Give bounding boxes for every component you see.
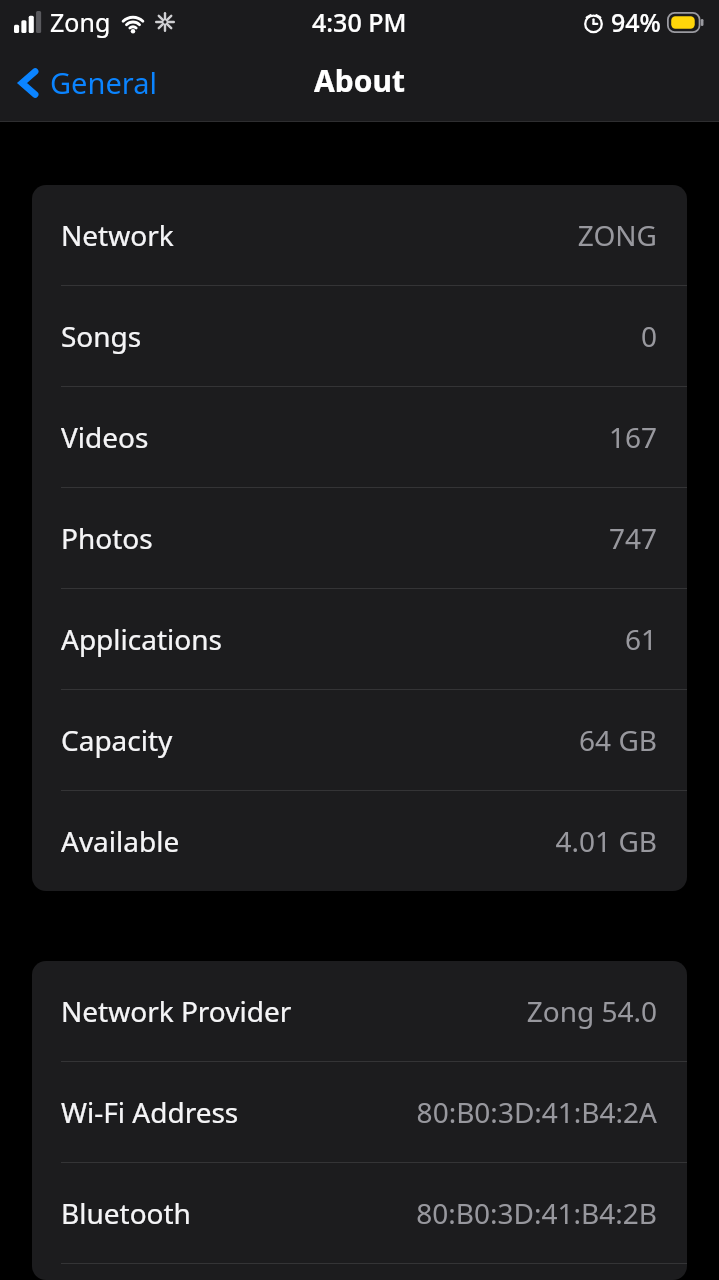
button[interactable]: Network Provider xyxy=(32,961,687,1061)
staticText: 80:B0:3D:41:B4:2A xyxy=(247,1093,657,1131)
button[interactable]: Network xyxy=(32,185,687,285)
staticText: 64 GB xyxy=(181,721,657,759)
staticText: General xyxy=(50,63,157,102)
staticText: 0 xyxy=(150,317,657,355)
button[interactable]: Capacity xyxy=(32,690,687,790)
staticText: iPhone. xyxy=(48,92,143,126)
staticText: Zong 54.0 xyxy=(300,992,657,1030)
staticText: Songs xyxy=(61,317,142,355)
staticText: Capacity xyxy=(61,721,173,759)
staticText: 747 xyxy=(161,519,657,557)
button[interactable]: Photos xyxy=(32,488,687,588)
staticText: 167 xyxy=(157,418,657,456)
button[interactable]: General xyxy=(14,59,161,106)
staticText: 61 xyxy=(230,620,657,658)
button[interactable]: Songs xyxy=(32,286,687,386)
staticText: Network Provider xyxy=(61,992,292,1030)
button[interactable]: Videos xyxy=(32,387,687,487)
staticText: 4:30 PM xyxy=(312,5,407,39)
staticText: 94% xyxy=(611,5,661,39)
staticText: 80:B0:3D:41:B4:2B xyxy=(199,1194,657,1232)
button[interactable]: Applications xyxy=(32,589,687,689)
button[interactable]: Bluetooth xyxy=(32,1163,687,1263)
staticText: About xyxy=(314,60,405,101)
button[interactable]: Wi-Fi Address xyxy=(32,1062,687,1162)
staticText: Bluetooth xyxy=(61,1194,191,1232)
staticText: 4.01 GB xyxy=(188,822,657,860)
staticText: Available xyxy=(61,822,180,860)
staticText: ZONG xyxy=(182,216,657,254)
staticText: Network xyxy=(61,216,174,254)
staticText: Wi-Fi Address xyxy=(61,1093,239,1131)
staticText: Applications xyxy=(61,620,222,658)
button[interactable]: Available xyxy=(32,791,687,891)
staticText: Photos xyxy=(61,519,153,557)
staticText: Zong xyxy=(50,5,111,39)
staticText: Videos xyxy=(61,418,149,456)
staticText: Learn more... xyxy=(143,92,300,126)
